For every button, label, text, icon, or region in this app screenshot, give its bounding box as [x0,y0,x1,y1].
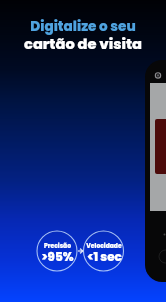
staticText: <1 sec [87,248,122,265]
button[interactable]: Precisão [37,231,77,271]
staticText: Digitalize o seu [30,17,136,36]
staticText: Precisão [44,242,71,250]
staticText: >95% [41,248,74,265]
staticText: cartão de visita [24,34,142,54]
button[interactable]: Velocidade [84,231,124,271]
staticText: Velocidade [86,242,122,250]
